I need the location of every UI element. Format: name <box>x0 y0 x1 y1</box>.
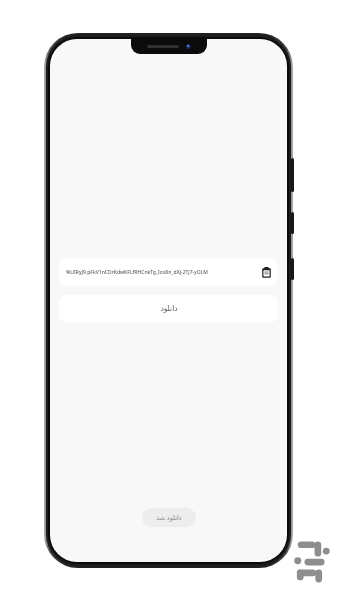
button[interactable]: دانلود <box>59 295 278 322</box>
button[interactable]: %UIRyJ9.pFkV1nCDrKdwKFLfRHCnkTg_Ico8n_dX… <box>59 258 278 286</box>
staticText: دانلود شد <box>156 513 182 522</box>
button[interactable]: دانلود شد <box>142 508 196 527</box>
staticText: دانلود <box>160 304 178 313</box>
button[interactable]: Paste from clipboard <box>260 266 273 279</box>
staticText: %UIRyJ9.pFkV1nCDrKdwKFLfRHCnkTg_Ico8n_dX… <box>66 269 208 276</box>
